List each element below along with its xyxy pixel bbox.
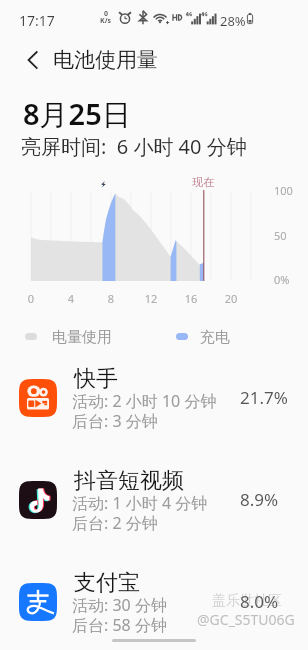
button[interactable]: Back xyxy=(14,38,50,82)
staticText: 20 xyxy=(219,291,243,306)
staticText: 50 xyxy=(274,228,287,243)
staticText: 0 xyxy=(104,9,109,19)
button[interactable]: 快手 xyxy=(0,360,308,462)
staticText: 0% xyxy=(274,272,290,287)
staticText: 活动: 30 分钟 xyxy=(72,594,167,616)
staticText: 充电 xyxy=(200,328,230,347)
staticText: 12 xyxy=(139,291,163,306)
staticText: 0 xyxy=(19,291,43,306)
staticText: 后台: 2 分钟 xyxy=(72,512,158,534)
staticText: 8月25日 xyxy=(23,94,131,134)
button[interactable]: 支付宝 xyxy=(0,564,308,650)
staticText: 盖乐世社区 xyxy=(212,592,282,610)
staticText: 活动: 1 小时 4 分钟 xyxy=(72,492,208,514)
staticText: 16 xyxy=(179,291,203,306)
staticText: 8 xyxy=(99,291,123,306)
staticText: 支付宝 xyxy=(74,569,140,597)
staticText: 21.7% xyxy=(240,386,288,409)
staticText: 现在 xyxy=(192,175,214,189)
staticText: 后台: 3 分钟 xyxy=(72,410,158,432)
staticText: 后台: 58 分钟 xyxy=(72,614,167,636)
staticText: 电量使用 xyxy=(52,328,112,347)
staticText: 4 xyxy=(59,291,83,306)
staticText: 28% xyxy=(220,12,246,30)
staticText: K/s xyxy=(100,16,112,26)
staticText: 活动: 2 小时 10 分钟 xyxy=(72,390,217,412)
staticText: 17:17 xyxy=(19,11,55,30)
staticText: 100 xyxy=(274,183,293,198)
button[interactable]: 抖音短视频 xyxy=(0,462,308,564)
staticText: 抖音短视频 xyxy=(74,467,184,495)
staticText: 电池使用量 xyxy=(53,47,158,73)
staticText: 亮屏时间: 6 小时 40 分钟 xyxy=(21,133,247,160)
staticText: @GC_S5TU06G xyxy=(197,610,295,629)
staticText: 8.0% xyxy=(240,590,279,613)
staticText: 8.9% xyxy=(240,488,279,511)
staticText: 快手 xyxy=(74,365,118,393)
